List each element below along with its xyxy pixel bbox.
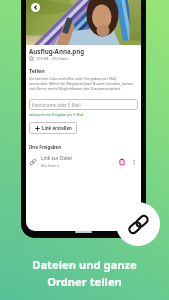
staticText: anonymische Freigabe per E-Mail bbox=[29, 112, 84, 117]
staticText: Ordner teilen bbox=[47, 274, 122, 289]
staticText: Kontoname oder E-Mail bbox=[32, 102, 81, 108]
button[interactable]: Kontoname oder E-Mail bbox=[29, 99, 138, 110]
button[interactable]: Link teilen bbox=[116, 202, 160, 246]
button[interactable]: Kopieren bbox=[118, 158, 126, 166]
staticText: Sie können Links erstellen oder Freigabe… bbox=[29, 76, 134, 91]
staticText: Teilen bbox=[29, 67, 45, 74]
button[interactable]: Link erstellen bbox=[29, 122, 77, 134]
staticText: 103 KB · 2% Datei bbox=[36, 56, 68, 61]
button[interactable]: Zurück bbox=[31, 3, 40, 12]
button[interactable]: Mehr Optionen bbox=[130, 158, 138, 166]
staticText: Link erstellen bbox=[42, 125, 72, 131]
staticText: Nur lesen ▾ bbox=[41, 163, 59, 168]
button[interactable]: Link zur Datei bbox=[29, 155, 138, 168]
staticText: Dateien und ganze bbox=[32, 257, 137, 272]
staticText: Link zur Datei bbox=[41, 155, 72, 162]
staticText: Ausflug-Anna.png bbox=[29, 47, 85, 55]
staticText: Ihre Freigaben bbox=[29, 144, 62, 150]
